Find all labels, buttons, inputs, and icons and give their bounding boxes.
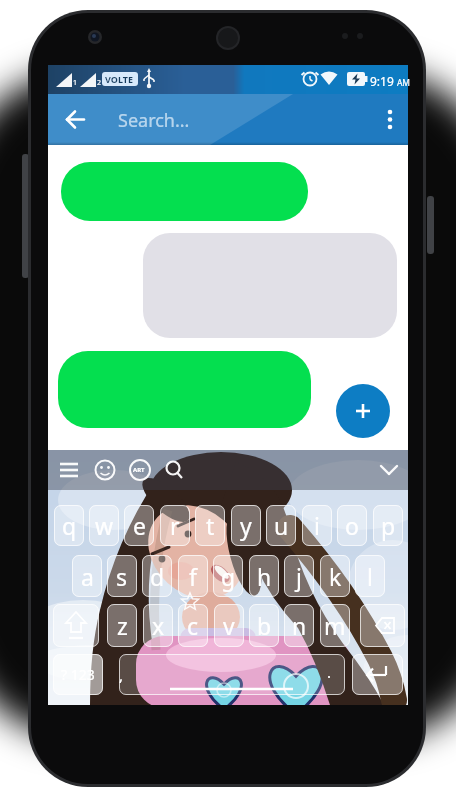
button[interactable]: k [320, 555, 350, 597]
button[interactable]: o [337, 505, 367, 546]
button[interactable]: y [231, 505, 261, 546]
button[interactable]: m [320, 604, 350, 647]
staticText: u [274, 510, 289, 541]
staticText: h [257, 561, 272, 592]
staticText: f [189, 561, 197, 592]
button[interactable]: d [142, 555, 172, 597]
staticText: 9:19 AM [370, 73, 411, 89]
button[interactable]: l [355, 555, 385, 597]
staticText: a [81, 561, 94, 592]
button[interactable] [161, 454, 187, 486]
button[interactable] [378, 106, 402, 134]
button[interactable]: z [107, 604, 137, 647]
staticText: r [170, 510, 180, 541]
button[interactable]: r [160, 505, 190, 546]
button[interactable]: c [178, 604, 208, 647]
staticText: . [327, 662, 332, 682]
staticText: 2 [97, 78, 102, 88]
staticText: t [206, 510, 215, 541]
staticText: VOLTE [105, 73, 133, 85]
button[interactable]: w [89, 505, 119, 546]
staticText: p [381, 510, 396, 541]
button[interactable]: ? 123 [53, 654, 103, 695]
staticText: n [292, 610, 307, 641]
button[interactable]: f [178, 555, 208, 597]
staticText: e [133, 510, 146, 541]
button[interactable]: a [72, 555, 102, 597]
button[interactable] [119, 654, 345, 695]
button[interactable]: v [214, 604, 244, 647]
staticText: g [221, 561, 236, 592]
button[interactable] [374, 454, 404, 486]
staticText: q [62, 510, 77, 541]
staticText: i [314, 510, 320, 541]
staticText: , [119, 665, 124, 685]
staticText: x [152, 610, 165, 641]
staticText: d [150, 561, 165, 592]
staticText: l [367, 561, 373, 592]
staticText: v [223, 610, 235, 641]
button[interactable]: x [143, 604, 173, 647]
button[interactable]: Search... [118, 102, 358, 138]
staticText: c [187, 610, 199, 641]
staticText: o [345, 510, 359, 541]
button[interactable]: n [284, 604, 314, 647]
button[interactable]: s [107, 555, 137, 597]
button[interactable]: b [249, 604, 279, 647]
button[interactable] [128, 454, 154, 486]
staticText: 1 [73, 78, 78, 88]
button[interactable]: h [249, 555, 279, 597]
staticText: ? 123 [61, 665, 95, 684]
button[interactable]: t [195, 505, 225, 546]
staticText: ART [133, 466, 145, 474]
button[interactable]: g [213, 555, 243, 597]
button[interactable]: q [54, 505, 84, 546]
button[interactable]: j [284, 555, 314, 597]
staticText: b [257, 610, 272, 641]
staticText: z [117, 610, 128, 641]
staticText: k [329, 561, 342, 592]
staticText: s [116, 561, 128, 592]
button[interactable]: u [266, 505, 296, 546]
button[interactable]: i [302, 505, 332, 546]
button[interactable] [352, 654, 403, 695]
button[interactable] [336, 384, 390, 438]
staticText: j [296, 561, 302, 592]
button[interactable] [52, 454, 86, 486]
button[interactable]: p [373, 505, 403, 546]
button[interactable]: e [124, 505, 154, 546]
staticText: w [95, 510, 114, 541]
button[interactable] [92, 454, 120, 486]
button[interactable] [60, 106, 90, 134]
staticText: y [240, 510, 252, 541]
button[interactable] [53, 604, 99, 647]
staticText: Search... [118, 108, 190, 133]
staticText: m [324, 610, 346, 641]
button[interactable] [360, 604, 405, 647]
